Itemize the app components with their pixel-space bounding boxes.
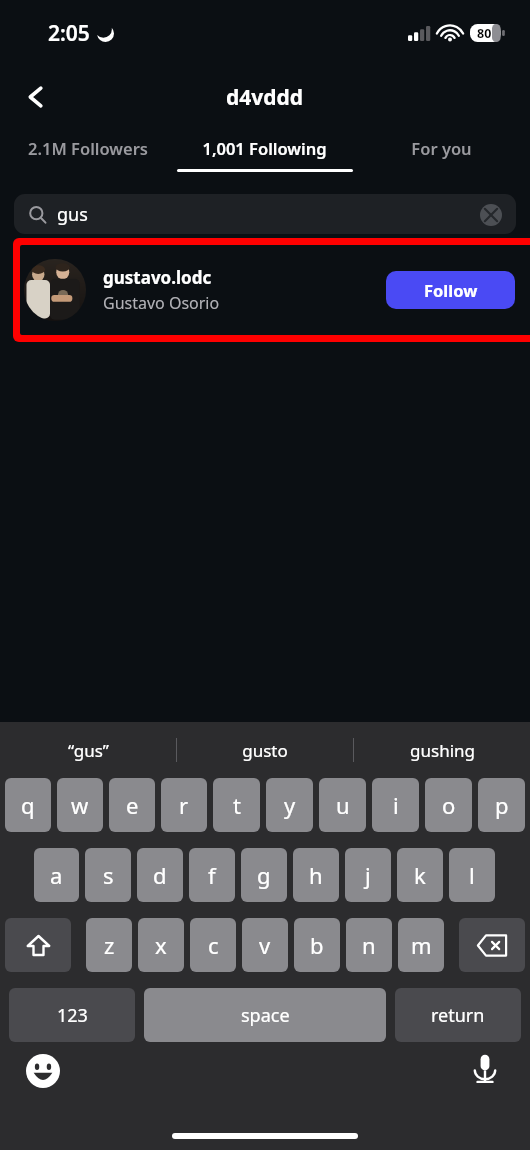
- staticText: l: [469, 860, 475, 890]
- button[interactable]: gushing: [354, 722, 530, 778]
- button[interactable]: k: [397, 848, 443, 902]
- staticText: “gus”: [68, 739, 109, 762]
- staticText: x: [155, 930, 167, 960]
- button[interactable]: Backspace: [459, 918, 525, 972]
- button[interactable]: g: [241, 848, 287, 902]
- staticText: v: [259, 930, 271, 960]
- button[interactable]: o: [425, 778, 472, 832]
- button[interactable]: l: [449, 848, 495, 902]
- staticText: gus: [57, 202, 88, 227]
- staticText: b: [310, 930, 324, 960]
- staticText: h: [309, 860, 323, 890]
- staticText: gustavo.lodc: [103, 266, 212, 289]
- button[interactable]: return: [395, 988, 521, 1042]
- staticText: q: [21, 790, 35, 820]
- button[interactable]: i: [372, 778, 419, 832]
- button[interactable]: s: [85, 848, 131, 902]
- button[interactable]: a: [34, 848, 79, 902]
- button[interactable]: Follow: [386, 271, 515, 309]
- button[interactable]: j: [345, 848, 391, 902]
- staticText: w: [71, 790, 89, 820]
- button[interactable]: p: [478, 778, 525, 832]
- staticText: r: [179, 790, 189, 820]
- staticText: 123: [57, 1003, 88, 1028]
- button[interactable]: b: [294, 918, 340, 972]
- button[interactable]: y: [266, 778, 313, 832]
- button[interactable]: d: [137, 848, 183, 902]
- button[interactable]: v: [242, 918, 288, 972]
- button[interactable]: Dictation: [468, 1052, 502, 1086]
- staticText: t: [233, 790, 241, 820]
- staticText: Follow: [424, 279, 478, 301]
- staticText: 2:05: [48, 19, 90, 48]
- staticText: p: [495, 790, 509, 820]
- button[interactable]: space: [144, 988, 386, 1042]
- staticText: gushing: [410, 739, 475, 762]
- button[interactable]: x: [138, 918, 184, 972]
- staticText: e: [126, 790, 139, 820]
- button[interactable]: 2.1M Followers: [0, 128, 176, 184]
- staticText: 1,001 Following: [202, 137, 327, 159]
- staticText: o: [442, 790, 456, 820]
- staticText: i: [393, 790, 399, 820]
- staticText: z: [104, 930, 115, 960]
- button[interactable]: q: [5, 778, 51, 832]
- staticText: 2.1M Followers: [28, 137, 148, 159]
- button[interactable]: Clear: [480, 204, 502, 226]
- staticText: m: [411, 930, 432, 960]
- button[interactable]: 123: [9, 988, 135, 1042]
- button[interactable]: Back: [12, 73, 60, 121]
- staticText: y: [284, 790, 296, 820]
- staticText: For you: [411, 137, 472, 159]
- staticText: j: [365, 860, 371, 890]
- staticText: return: [431, 1003, 485, 1028]
- staticText: gusto: [242, 739, 288, 762]
- button[interactable]: u: [319, 778, 366, 832]
- button[interactable]: h: [293, 848, 339, 902]
- staticText: s: [103, 860, 114, 890]
- button[interactable]: gustavo.lodc: [24, 246, 515, 334]
- staticText: f: [208, 860, 216, 890]
- button[interactable]: f: [189, 848, 235, 902]
- staticText: k: [414, 860, 426, 890]
- button[interactable]: For you: [353, 128, 530, 184]
- staticText: a: [50, 860, 63, 890]
- button[interactable]: w: [57, 778, 103, 832]
- button[interactable]: gus: [14, 194, 516, 234]
- staticText: n: [362, 930, 376, 960]
- staticText: 80: [477, 25, 492, 42]
- button[interactable]: n: [346, 918, 392, 972]
- button[interactable]: z: [86, 918, 132, 972]
- button[interactable]: Emoji: [26, 1054, 60, 1088]
- button[interactable]: gusto: [177, 722, 353, 778]
- button[interactable]: c: [190, 918, 236, 972]
- button[interactable]: Shift: [5, 918, 71, 972]
- button[interactable]: 1,001 Following: [176, 128, 353, 184]
- staticText: c: [208, 930, 219, 960]
- staticText: u: [336, 790, 350, 820]
- staticText: Gustavo Osorio: [103, 292, 220, 314]
- staticText: space: [241, 1003, 290, 1028]
- button[interactable]: “gus”: [0, 722, 176, 778]
- button[interactable]: m: [398, 918, 444, 972]
- staticText: d: [153, 860, 167, 890]
- button[interactable]: r: [161, 778, 207, 832]
- button[interactable]: t: [213, 778, 260, 832]
- staticText: g: [257, 860, 271, 890]
- button[interactable]: e: [109, 778, 155, 832]
- staticText: d4vddd: [226, 83, 304, 112]
